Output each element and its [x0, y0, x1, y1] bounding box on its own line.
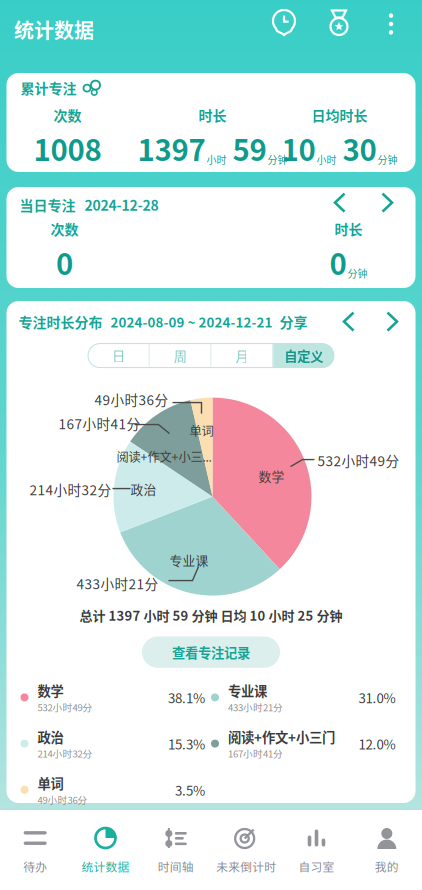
staticText: 专业课: [169, 551, 208, 569]
staticText: 单词: [37, 773, 63, 792]
button[interactable]: Focus timer: [270, 8, 300, 38]
staticText: 小时: [316, 152, 336, 166]
staticText: 167小时41分: [228, 746, 283, 760]
staticText: 小时: [206, 152, 226, 166]
staticText: 统计数据: [81, 858, 129, 875]
staticText: 周: [174, 346, 187, 365]
staticText: 待办: [23, 858, 47, 875]
staticText: 当日专注: [19, 195, 75, 215]
button[interactable]: Achievements: [325, 8, 353, 36]
staticText: 38.1%: [168, 688, 205, 707]
staticText: 分钟: [377, 152, 397, 166]
staticText: 1397: [137, 127, 205, 169]
staticText: 分钟: [267, 152, 287, 166]
staticText: 次数: [50, 219, 78, 239]
staticText: 总计 1397 小时 59 分钟 日均 10 小时 25 分钟: [79, 606, 342, 624]
staticText: 数学: [258, 467, 284, 485]
staticText: 月: [235, 346, 248, 365]
staticText: 12.0%: [358, 734, 395, 753]
button[interactable]: 待办: [0, 810, 70, 890]
staticText: 15.3%: [168, 734, 205, 753]
button[interactable]: 时间轴: [141, 810, 211, 890]
staticText: 日均时长: [311, 105, 367, 125]
staticText: 政治: [37, 727, 63, 746]
staticText: 532小时49分: [37, 700, 92, 714]
staticText: 时长: [198, 105, 226, 125]
staticText: 查看专注记录: [172, 642, 250, 662]
staticText: 累计专注: [20, 77, 76, 98]
button[interactable]: 统计数据: [70, 810, 141, 890]
button[interactable]: Next day: [374, 190, 398, 216]
button[interactable]: 自定义: [273, 344, 334, 368]
staticText: 我的: [375, 858, 399, 875]
staticText: 专注时长分布: [18, 311, 102, 332]
staticText: 次数: [53, 105, 81, 125]
staticText: 2024-12-28: [84, 195, 158, 215]
staticText: 自习室: [298, 858, 334, 875]
button[interactable]: 我的: [352, 810, 422, 890]
staticText: 自定义: [284, 346, 323, 365]
staticText: 10: [281, 127, 315, 169]
staticText: 时长: [334, 219, 362, 239]
button[interactable]: 月: [211, 344, 272, 368]
button[interactable]: 查看专注记录: [142, 636, 280, 668]
staticText: 日: [112, 346, 125, 365]
staticText: 0: [56, 241, 73, 283]
staticText: 214小时32分: [29, 480, 111, 499]
staticText: 2024-08-09 ~ 2024-12-21: [110, 312, 272, 331]
button[interactable]: Previous range: [337, 309, 361, 335]
button[interactable]: 自习室: [281, 810, 352, 890]
button[interactable]: More options: [381, 10, 401, 38]
staticText: 分享: [279, 311, 307, 332]
staticText: 59: [232, 127, 266, 169]
staticText: 31.0%: [358, 688, 395, 707]
staticText: 433小时21分: [76, 574, 158, 593]
button[interactable]: 分享: [279, 311, 307, 332]
staticText: 30: [342, 127, 376, 169]
staticText: 532小时49分: [317, 451, 399, 470]
staticText: 数学: [37, 681, 63, 700]
button[interactable]: Previous day: [328, 190, 352, 216]
staticText: 单词: [189, 422, 213, 439]
button[interactable]: Next range: [379, 309, 403, 335]
staticText: 阅读+作文+小三...: [116, 448, 211, 465]
button[interactable]: 周: [150, 344, 211, 368]
staticText: 1008: [33, 127, 101, 169]
staticText: 分钟: [347, 266, 367, 280]
staticText: 49小时36分: [37, 792, 87, 806]
staticText: 政治: [130, 480, 156, 498]
button[interactable]: 未来倒计时: [211, 810, 281, 890]
staticText: 214小时32分: [37, 746, 92, 760]
staticText: 3.5%: [175, 780, 205, 799]
staticText: 49小时36分: [94, 390, 168, 409]
staticText: 时间轴: [158, 858, 194, 875]
staticText: 0: [329, 241, 346, 283]
staticText: 未来倒计时: [216, 858, 276, 875]
staticText: 433小时21分: [228, 700, 283, 714]
button[interactable]: 日: [88, 344, 149, 368]
staticText: 阅读+作文+小三门: [228, 727, 335, 746]
staticText: 统计数据: [14, 15, 94, 44]
staticText: 167小时41分: [58, 414, 140, 433]
staticText: 专业课: [228, 681, 267, 700]
